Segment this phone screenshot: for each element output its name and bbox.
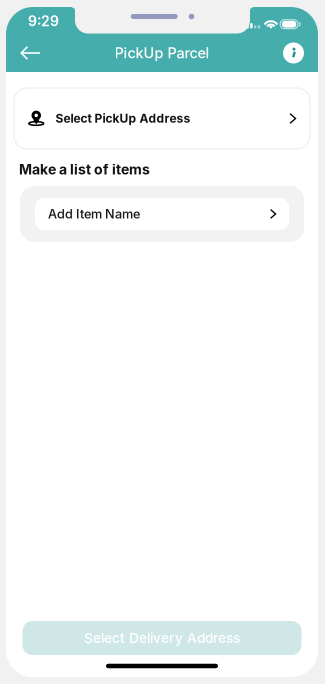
button[interactable]: Select PickUp Address [14, 88, 310, 149]
button[interactable]: Back [6, 38, 51, 68]
staticText: Select PickUp Address [55, 111, 190, 126]
button[interactable]: Select Delivery Address [22, 621, 301, 655]
staticText: PickUp Parcel [114, 44, 209, 62]
staticText: Add Item Name [48, 206, 140, 222]
staticText: Select Delivery Address [84, 630, 240, 646]
staticText: 9:29 [28, 13, 59, 30]
button[interactable]: Information [273, 38, 318, 68]
button[interactable]: Add Item Name [35, 198, 289, 230]
staticText: Make a list of items [19, 161, 150, 178]
